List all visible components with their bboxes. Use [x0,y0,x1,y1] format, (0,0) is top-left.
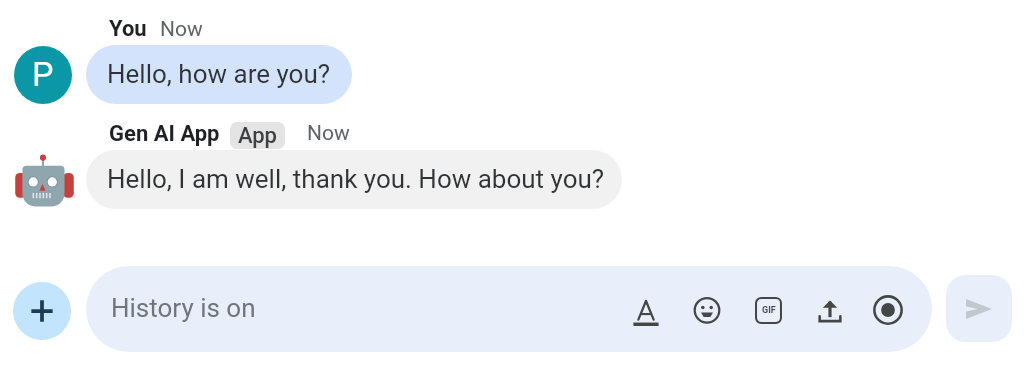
button[interactable]: History is on [86,266,932,352]
button[interactable]: Hello, how are you? [86,45,352,104]
staticText: Hello, how are you? [107,59,331,89]
other: Gen AI App avatar [14,149,75,208]
staticText: You [109,16,147,42]
button[interactable]: Upload [800,280,860,340]
staticText: Now [307,121,350,146]
button[interactable]: Emoji [677,280,737,340]
button[interactable]: Send [946,275,1012,342]
staticText: Gen AI App [109,121,220,147]
staticText: Hello, I am well, thank you. How about y… [107,164,605,194]
button[interactable]: Your avatar [14,46,72,104]
button[interactable]: Hello, I am well, thank you. How about y… [86,150,622,209]
staticText: Now [160,17,203,42]
button[interactable]: Format text [616,280,676,340]
staticText: GIF [762,305,776,316]
button[interactable]: Record [858,280,918,340]
button[interactable]: GIF [738,280,798,340]
staticText: P [32,54,54,94]
staticText: App [238,123,277,149]
button[interactable]: App [230,122,285,149]
staticText: History is on [111,293,256,323]
button[interactable]: Add [13,282,71,340]
